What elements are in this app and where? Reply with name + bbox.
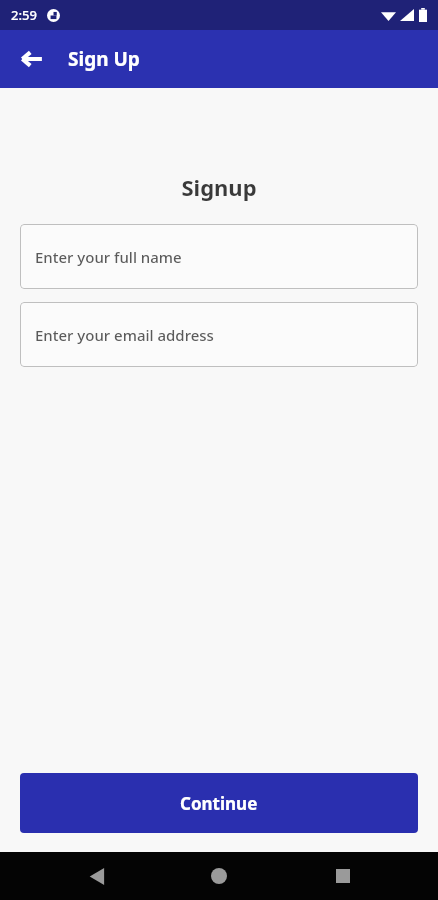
button[interactable]: Back: [68, 852, 124, 900]
button[interactable]: Continue: [20, 773, 418, 833]
staticText: Sign Up: [68, 46, 140, 72]
staticText: Enter your full name: [35, 247, 182, 267]
button[interactable]: Home: [191, 852, 247, 900]
button[interactable]: Enter your email address: [20, 302, 418, 367]
button[interactable]: Recent apps: [315, 852, 371, 900]
staticText: Signup: [0, 172, 438, 202]
staticText: Enter your email address: [35, 325, 214, 345]
button[interactable]: Enter your full name: [20, 224, 418, 289]
button[interactable]: Back: [8, 35, 56, 83]
staticText: 2:59: [11, 6, 37, 24]
staticText: Continue: [180, 792, 258, 815]
